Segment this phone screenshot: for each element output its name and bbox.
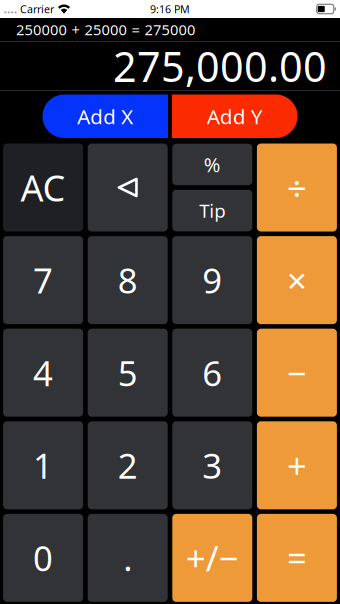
staticText: 275,000.00 bbox=[113, 39, 327, 93]
button[interactable]: Add Y bbox=[172, 94, 297, 138]
button[interactable]: Backspace bbox=[88, 143, 168, 231]
staticText: = bbox=[287, 535, 307, 581]
staticText: 8 bbox=[118, 257, 138, 303]
button[interactable]: . bbox=[88, 514, 168, 602]
staticText: 3 bbox=[202, 442, 222, 488]
staticText: 1 bbox=[33, 442, 53, 488]
staticText: +/− bbox=[186, 535, 239, 581]
staticText: Tip bbox=[199, 198, 225, 223]
staticText: Carrier bbox=[20, 2, 54, 16]
staticText: % bbox=[204, 151, 221, 178]
button[interactable]: × bbox=[257, 236, 337, 324]
button[interactable]: 9 bbox=[172, 236, 252, 324]
button[interactable]: Tip bbox=[172, 190, 252, 231]
button[interactable]: = bbox=[257, 514, 337, 602]
staticText: Add X bbox=[77, 102, 133, 130]
staticText: 6 bbox=[202, 350, 222, 396]
button[interactable]: + bbox=[257, 421, 337, 509]
staticText: Add Y bbox=[207, 102, 263, 130]
staticText: . bbox=[123, 535, 132, 581]
button[interactable]: 1 bbox=[3, 421, 83, 509]
staticText: 250000 + 25000 = 275000 bbox=[16, 20, 195, 39]
staticText: 2 bbox=[118, 442, 138, 488]
staticText: 4 bbox=[33, 350, 53, 396]
button[interactable]: % bbox=[172, 144, 252, 185]
button[interactable]: 7 bbox=[3, 236, 83, 324]
staticText: 9:16 PM bbox=[150, 2, 190, 16]
button[interactable]: +/− bbox=[172, 514, 252, 602]
button[interactable]: 4 bbox=[3, 329, 83, 417]
button[interactable]: 0 bbox=[3, 514, 83, 602]
button[interactable]: 2 bbox=[88, 421, 168, 509]
staticText: AC bbox=[21, 164, 66, 211]
staticText: 0 bbox=[33, 535, 53, 581]
button[interactable]: 6 bbox=[172, 329, 252, 417]
button[interactable]: 5 bbox=[88, 329, 168, 417]
staticText: ÷ bbox=[287, 164, 307, 210]
staticText: + bbox=[287, 442, 307, 488]
button[interactable]: Add X bbox=[42, 94, 168, 138]
button[interactable]: AC bbox=[3, 143, 83, 231]
button[interactable]: 3 bbox=[172, 421, 252, 509]
staticText: 9 bbox=[202, 257, 222, 303]
button[interactable]: − bbox=[257, 329, 337, 417]
staticText: 7 bbox=[33, 257, 53, 303]
staticText: − bbox=[287, 350, 307, 396]
button[interactable]: ÷ bbox=[257, 143, 337, 231]
button[interactable]: 8 bbox=[88, 236, 168, 324]
staticText: 5 bbox=[118, 350, 138, 396]
staticText: × bbox=[287, 257, 307, 303]
